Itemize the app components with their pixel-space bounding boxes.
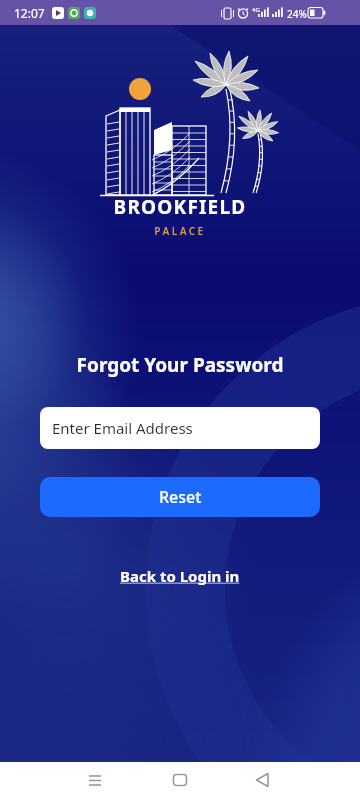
staticText: Enter Email Address: [52, 418, 193, 438]
staticText: Reset: [159, 486, 202, 508]
staticText: Forgot Your Password: [0, 352, 360, 378]
staticText: 4G: [252, 6, 260, 14]
button[interactable]: Enter Email Address: [40, 407, 320, 449]
staticText: BROOKFIELD: [0, 194, 360, 220]
button[interactable]: [248, 767, 276, 795]
button[interactable]: [166, 767, 194, 795]
button[interactable]: Reset: [40, 477, 320, 517]
staticText: 12:07: [14, 5, 45, 21]
staticText: PALACE: [0, 224, 360, 238]
button[interactable]: [81, 767, 109, 795]
staticText: 24%: [287, 7, 307, 21]
button[interactable]: Back to Login in: [120, 566, 240, 586]
